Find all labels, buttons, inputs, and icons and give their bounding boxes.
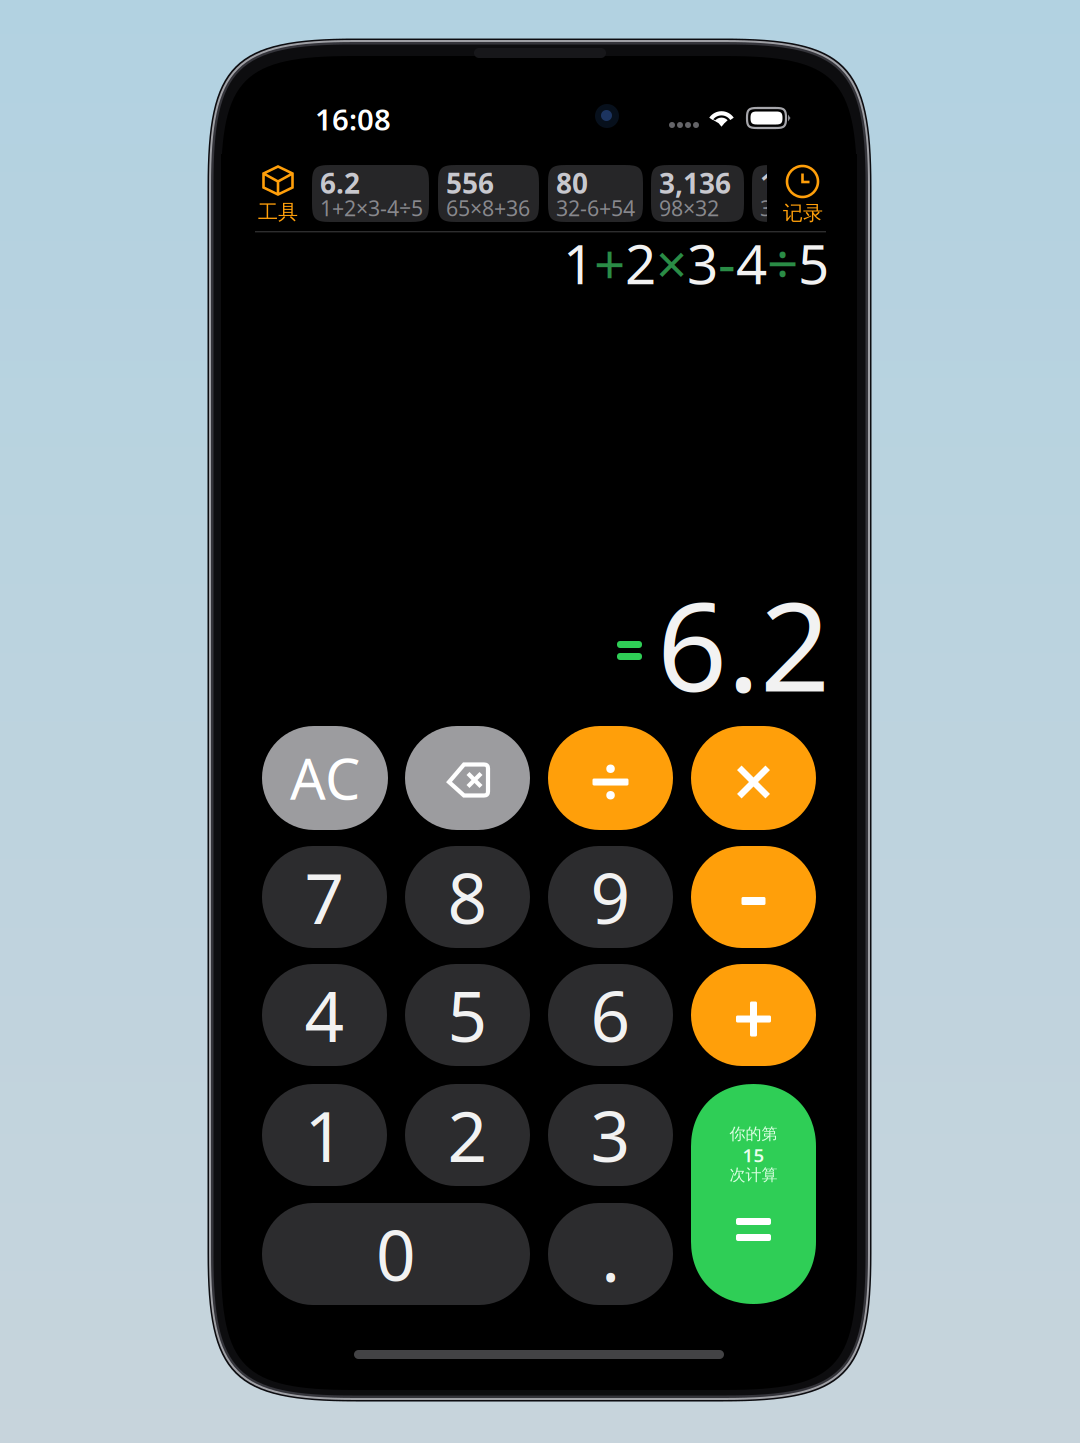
staticText: 1 xyxy=(304,1089,344,1181)
button[interactable]: 4 xyxy=(262,964,387,1066)
staticText: + xyxy=(594,227,625,299)
staticText: 6.2 xyxy=(657,563,830,725)
staticText: × xyxy=(656,227,687,299)
button[interactable]: 556 xyxy=(438,165,539,222)
staticText: 9 xyxy=(590,851,630,943)
button[interactable]: Plus xyxy=(691,964,816,1066)
staticText: . xyxy=(601,1206,620,1302)
button[interactable]: 记录 xyxy=(775,166,831,226)
button[interactable]: 80 xyxy=(548,165,643,222)
staticText: 3,136 xyxy=(659,164,731,202)
staticText: - xyxy=(718,227,736,299)
button[interactable]: Divide xyxy=(548,726,673,830)
button[interactable]: AC xyxy=(262,726,388,830)
staticText: 10 xyxy=(760,164,792,202)
staticText: 98×32 xyxy=(659,194,719,222)
staticText: 4 xyxy=(736,227,767,299)
staticText: 15 xyxy=(742,1143,764,1167)
staticText: 2 xyxy=(625,227,656,299)
staticText: 3 xyxy=(590,1089,630,1181)
button[interactable]: 7 xyxy=(262,846,387,948)
button[interactable]: 5 xyxy=(405,964,530,1066)
button[interactable]: 3,136 xyxy=(651,165,744,222)
staticText: 3 xyxy=(687,227,718,299)
button[interactable]: 3 xyxy=(548,1084,673,1186)
staticText: 6 xyxy=(590,969,630,1061)
staticText: 80 xyxy=(556,164,588,202)
button[interactable] xyxy=(691,1084,816,1304)
button[interactable]: Multiply xyxy=(691,726,816,830)
button[interactable]: 工具 xyxy=(250,165,306,225)
staticText: 你的第 xyxy=(729,1124,777,1144)
button[interactable]: 2 xyxy=(405,1084,530,1186)
staticText: 16:08 xyxy=(315,99,391,138)
staticText: 5 xyxy=(447,969,487,1061)
button[interactable]: Minus xyxy=(691,846,816,948)
button[interactable]: 6 xyxy=(548,964,673,1066)
staticText: 6.2 xyxy=(320,164,360,202)
staticText: 7 xyxy=(304,851,344,943)
button[interactable]: 0 xyxy=(262,1203,530,1305)
button[interactable]: Delete xyxy=(405,726,530,830)
staticText: 556 xyxy=(446,164,494,202)
staticText: AC xyxy=(290,741,360,815)
staticText: 记录 xyxy=(783,201,823,225)
button[interactable]: . xyxy=(548,1203,673,1305)
staticText: 0 xyxy=(376,1208,416,1300)
button[interactable]: 6.2 xyxy=(312,165,429,222)
staticText: ÷ xyxy=(767,227,798,299)
staticText: 5 xyxy=(798,227,829,299)
staticText: 32-6+54 xyxy=(556,194,635,222)
staticText: 1+2×3-4÷5 xyxy=(320,194,423,222)
button[interactable]: 10 xyxy=(752,165,814,222)
staticText: 1 xyxy=(563,227,594,299)
button[interactable]: 8 xyxy=(405,846,530,948)
staticText: 工具 xyxy=(258,200,298,224)
staticText: 4 xyxy=(304,969,344,1061)
staticText: 65×8+36 xyxy=(446,194,530,222)
button[interactable]: 1 xyxy=(262,1084,387,1186)
staticText: 次计算 xyxy=(729,1165,777,1185)
staticText: 2 xyxy=(447,1089,487,1181)
staticText: 8 xyxy=(447,851,487,943)
staticText: 36 xyxy=(760,194,784,222)
button[interactable]: 9 xyxy=(548,846,673,948)
